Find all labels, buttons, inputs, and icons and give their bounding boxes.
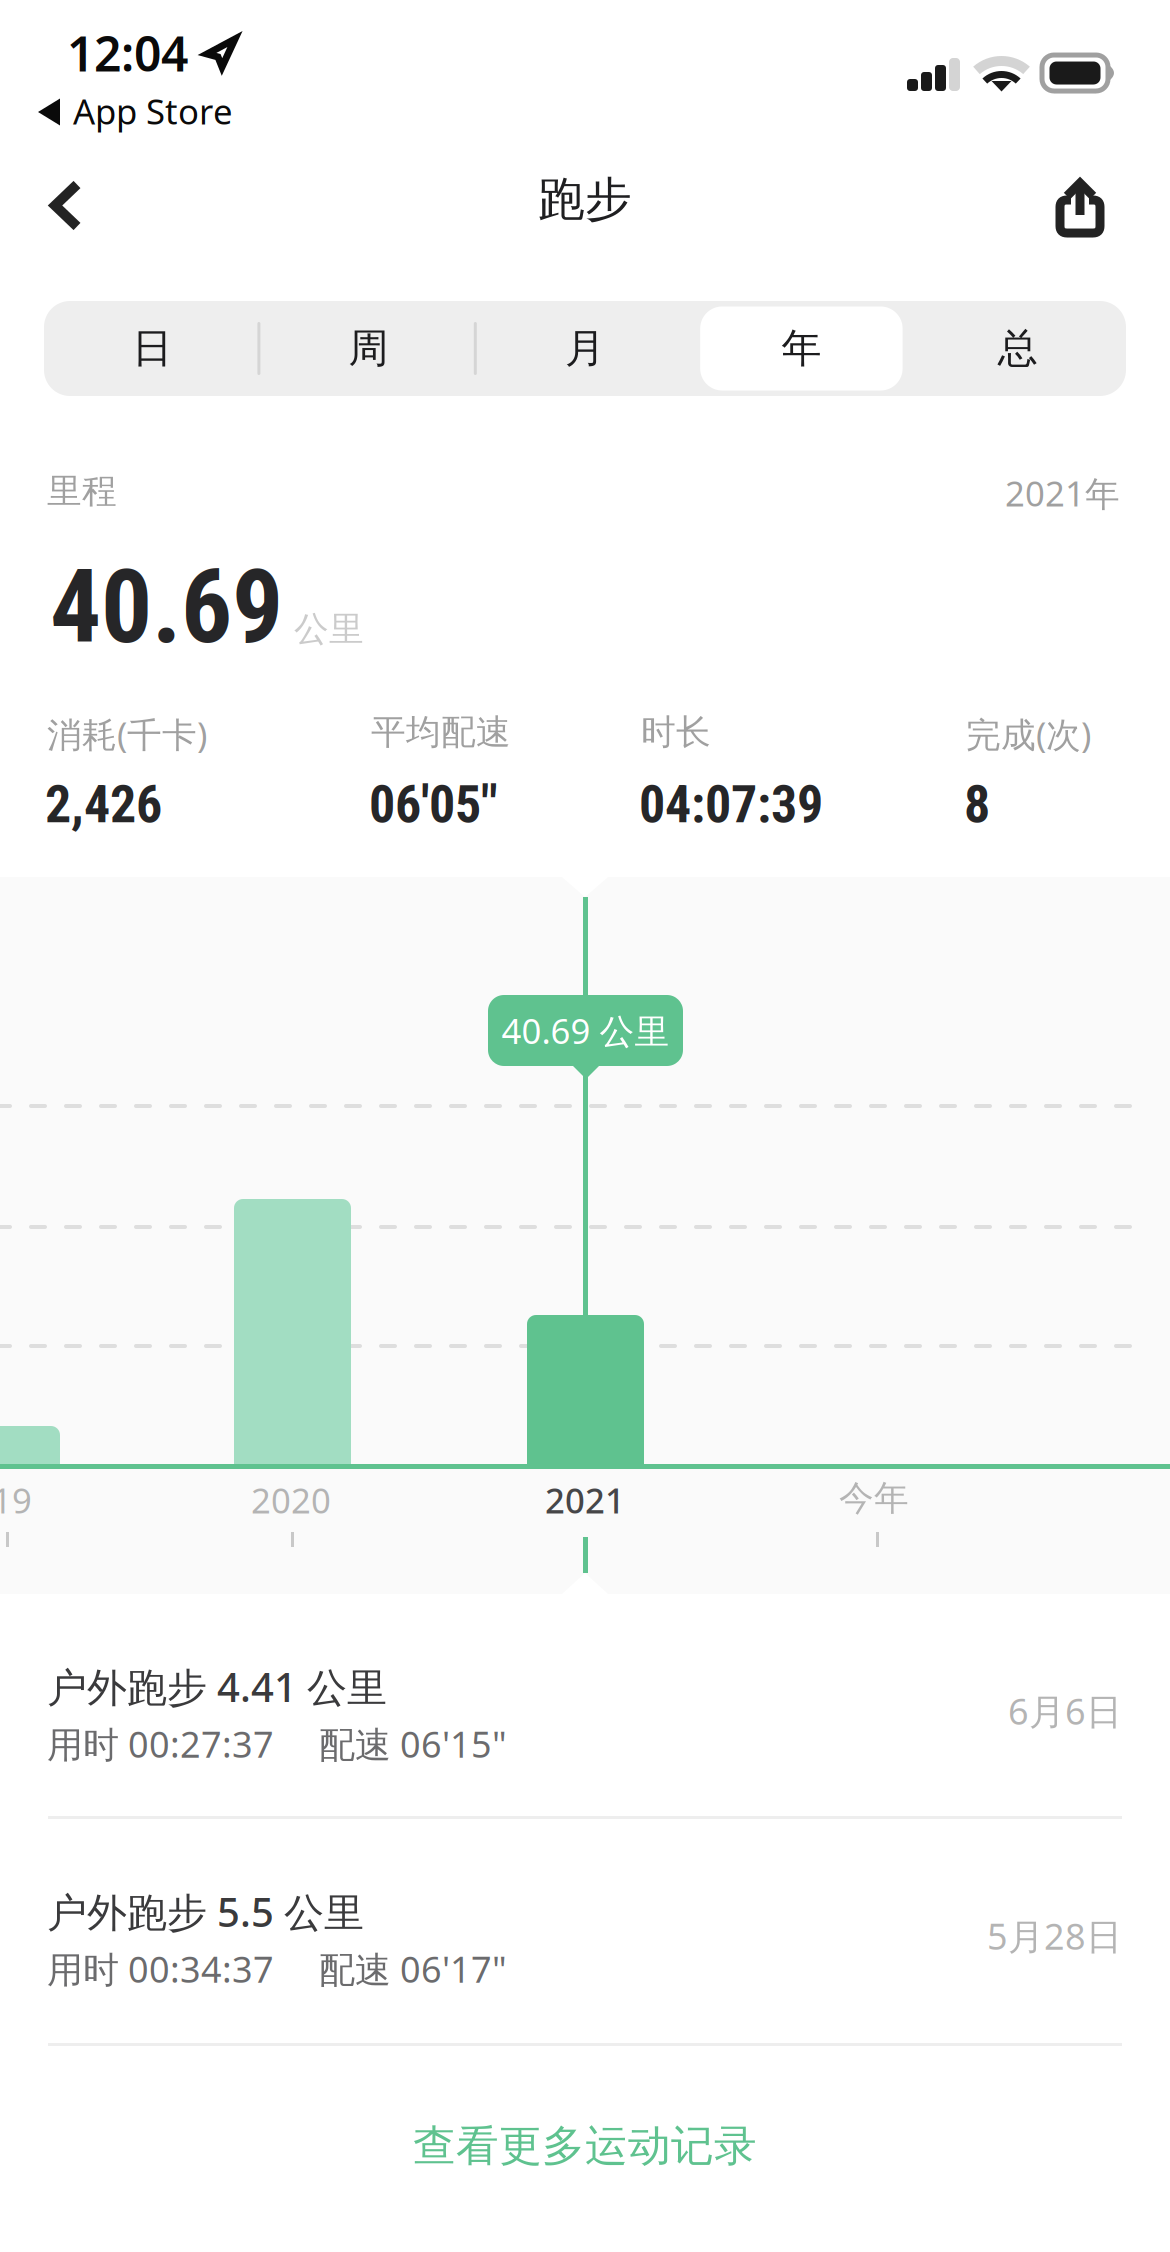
staticText: 年 bbox=[781, 324, 821, 373]
staticText: 2021 bbox=[545, 1477, 625, 1523]
staticText: 19 bbox=[0, 1477, 32, 1523]
staticText: 总 bbox=[998, 324, 1038, 373]
staticText: 用时 00:34:37 配速 06'17" bbox=[47, 1945, 507, 1993]
button[interactable]: 查看更多运动记录 bbox=[0, 2046, 1170, 2246]
staticText: 户外跑步 5.5 公里 bbox=[47, 1885, 364, 1938]
staticText: 用时 00:27:37 配速 06'15" bbox=[47, 1720, 507, 1768]
staticText: 消耗(千卡) bbox=[47, 711, 207, 757]
button[interactable]: 年 bbox=[693, 301, 910, 396]
staticText: 2020 bbox=[251, 1477, 331, 1523]
staticText: App Store bbox=[73, 88, 233, 134]
staticText: 完成(次) bbox=[966, 711, 1091, 757]
staticText: 月 bbox=[565, 324, 605, 373]
staticText: 8 bbox=[964, 774, 990, 835]
button[interactable]: 户外跑步 4.41 公里 bbox=[0, 1594, 1170, 1816]
button[interactable]: 日 bbox=[44, 301, 260, 396]
staticText: 40.69 bbox=[50, 548, 283, 667]
staticText: 平均配速 bbox=[371, 711, 511, 754]
staticText: 日 bbox=[132, 324, 172, 373]
button[interactable]: Back bbox=[24, 151, 105, 247]
staticText: 周 bbox=[349, 324, 389, 373]
staticText: 2,426 bbox=[45, 774, 162, 835]
button[interactable]: Share bbox=[1039, 149, 1146, 250]
staticText: 里程 bbox=[47, 470, 117, 513]
staticText: 06'05" bbox=[369, 774, 498, 835]
staticText: 6月6日 bbox=[1008, 1687, 1122, 1735]
staticText: 跑步 bbox=[538, 171, 632, 228]
button[interactable]: App Store bbox=[0, 87, 233, 137]
staticText: 04:07:39 bbox=[639, 774, 823, 835]
button[interactable]: 总 bbox=[910, 301, 1126, 396]
staticText: 40.69 公里 bbox=[501, 1007, 669, 1053]
staticText: 查看更多运动记录 bbox=[413, 2120, 757, 2172]
staticText: 12:04 bbox=[67, 21, 188, 85]
staticText: 公里 bbox=[294, 608, 364, 651]
button[interactable]: 月 bbox=[477, 301, 693, 396]
staticText: 户外跑步 4.41 公里 bbox=[47, 1660, 387, 1713]
button[interactable]: 户外跑步 5.5 公里 bbox=[0, 1819, 1170, 2043]
staticText: 今年 bbox=[839, 1477, 909, 1520]
button[interactable]: 周 bbox=[260, 301, 477, 396]
staticText: 时长 bbox=[641, 711, 711, 754]
staticText: 2021年 bbox=[1005, 470, 1120, 516]
staticText: 5月28日 bbox=[987, 1912, 1122, 1960]
